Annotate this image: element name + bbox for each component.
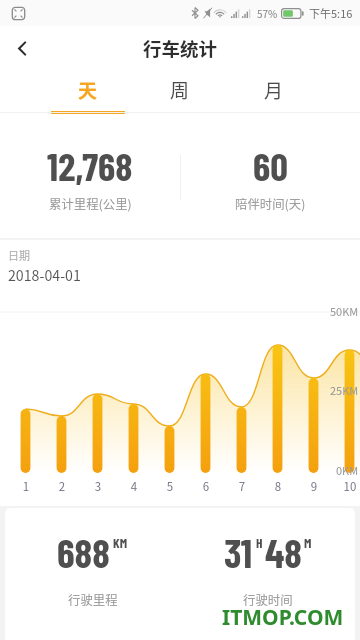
staticText: KM	[113, 534, 128, 550]
staticText: 7	[230, 478, 254, 495]
staticText: 下午5:16	[309, 5, 353, 21]
staticText: 5	[158, 478, 182, 495]
staticText: 2	[50, 478, 74, 495]
staticText: 陪伴时间(天)	[235, 195, 306, 213]
staticText: 50KM	[330, 303, 359, 319]
staticText: 6	[194, 478, 218, 495]
staticText: 10	[338, 478, 360, 495]
staticText: 25KM	[330, 382, 359, 398]
staticText: 3	[86, 478, 110, 495]
staticText: 57%	[257, 6, 278, 20]
button[interactable]: Back	[0, 26, 44, 70]
button[interactable]: 天	[50, 70, 126, 113]
staticText: 4	[122, 478, 146, 495]
staticText: 60	[253, 142, 288, 189]
staticText: 行车统计	[143, 35, 218, 62]
staticText: 8	[266, 478, 290, 495]
staticText: 月	[264, 76, 284, 104]
staticText: 行驶时间	[243, 591, 293, 609]
staticText: 行驶里程	[68, 591, 118, 609]
staticText: 累计里程(公里)	[49, 195, 132, 213]
staticText: M	[304, 534, 312, 550]
staticText: 0KM	[336, 462, 359, 478]
button[interactable]: 月	[236, 70, 312, 113]
staticText: 48	[265, 528, 302, 576]
staticText: 9	[302, 478, 326, 495]
staticText: 2018-04-01	[8, 265, 81, 286]
staticText: 天	[78, 76, 98, 104]
staticText: 688	[57, 528, 110, 576]
staticText: 日期	[8, 247, 30, 263]
staticText: ITMOP.COM	[222, 603, 344, 632]
staticText: 12,768	[47, 142, 133, 189]
staticText: 31	[224, 528, 253, 576]
staticText: 1	[14, 478, 38, 495]
staticText: 周	[170, 76, 190, 104]
button[interactable]: 周	[142, 70, 218, 113]
staticText: H	[256, 534, 263, 550]
